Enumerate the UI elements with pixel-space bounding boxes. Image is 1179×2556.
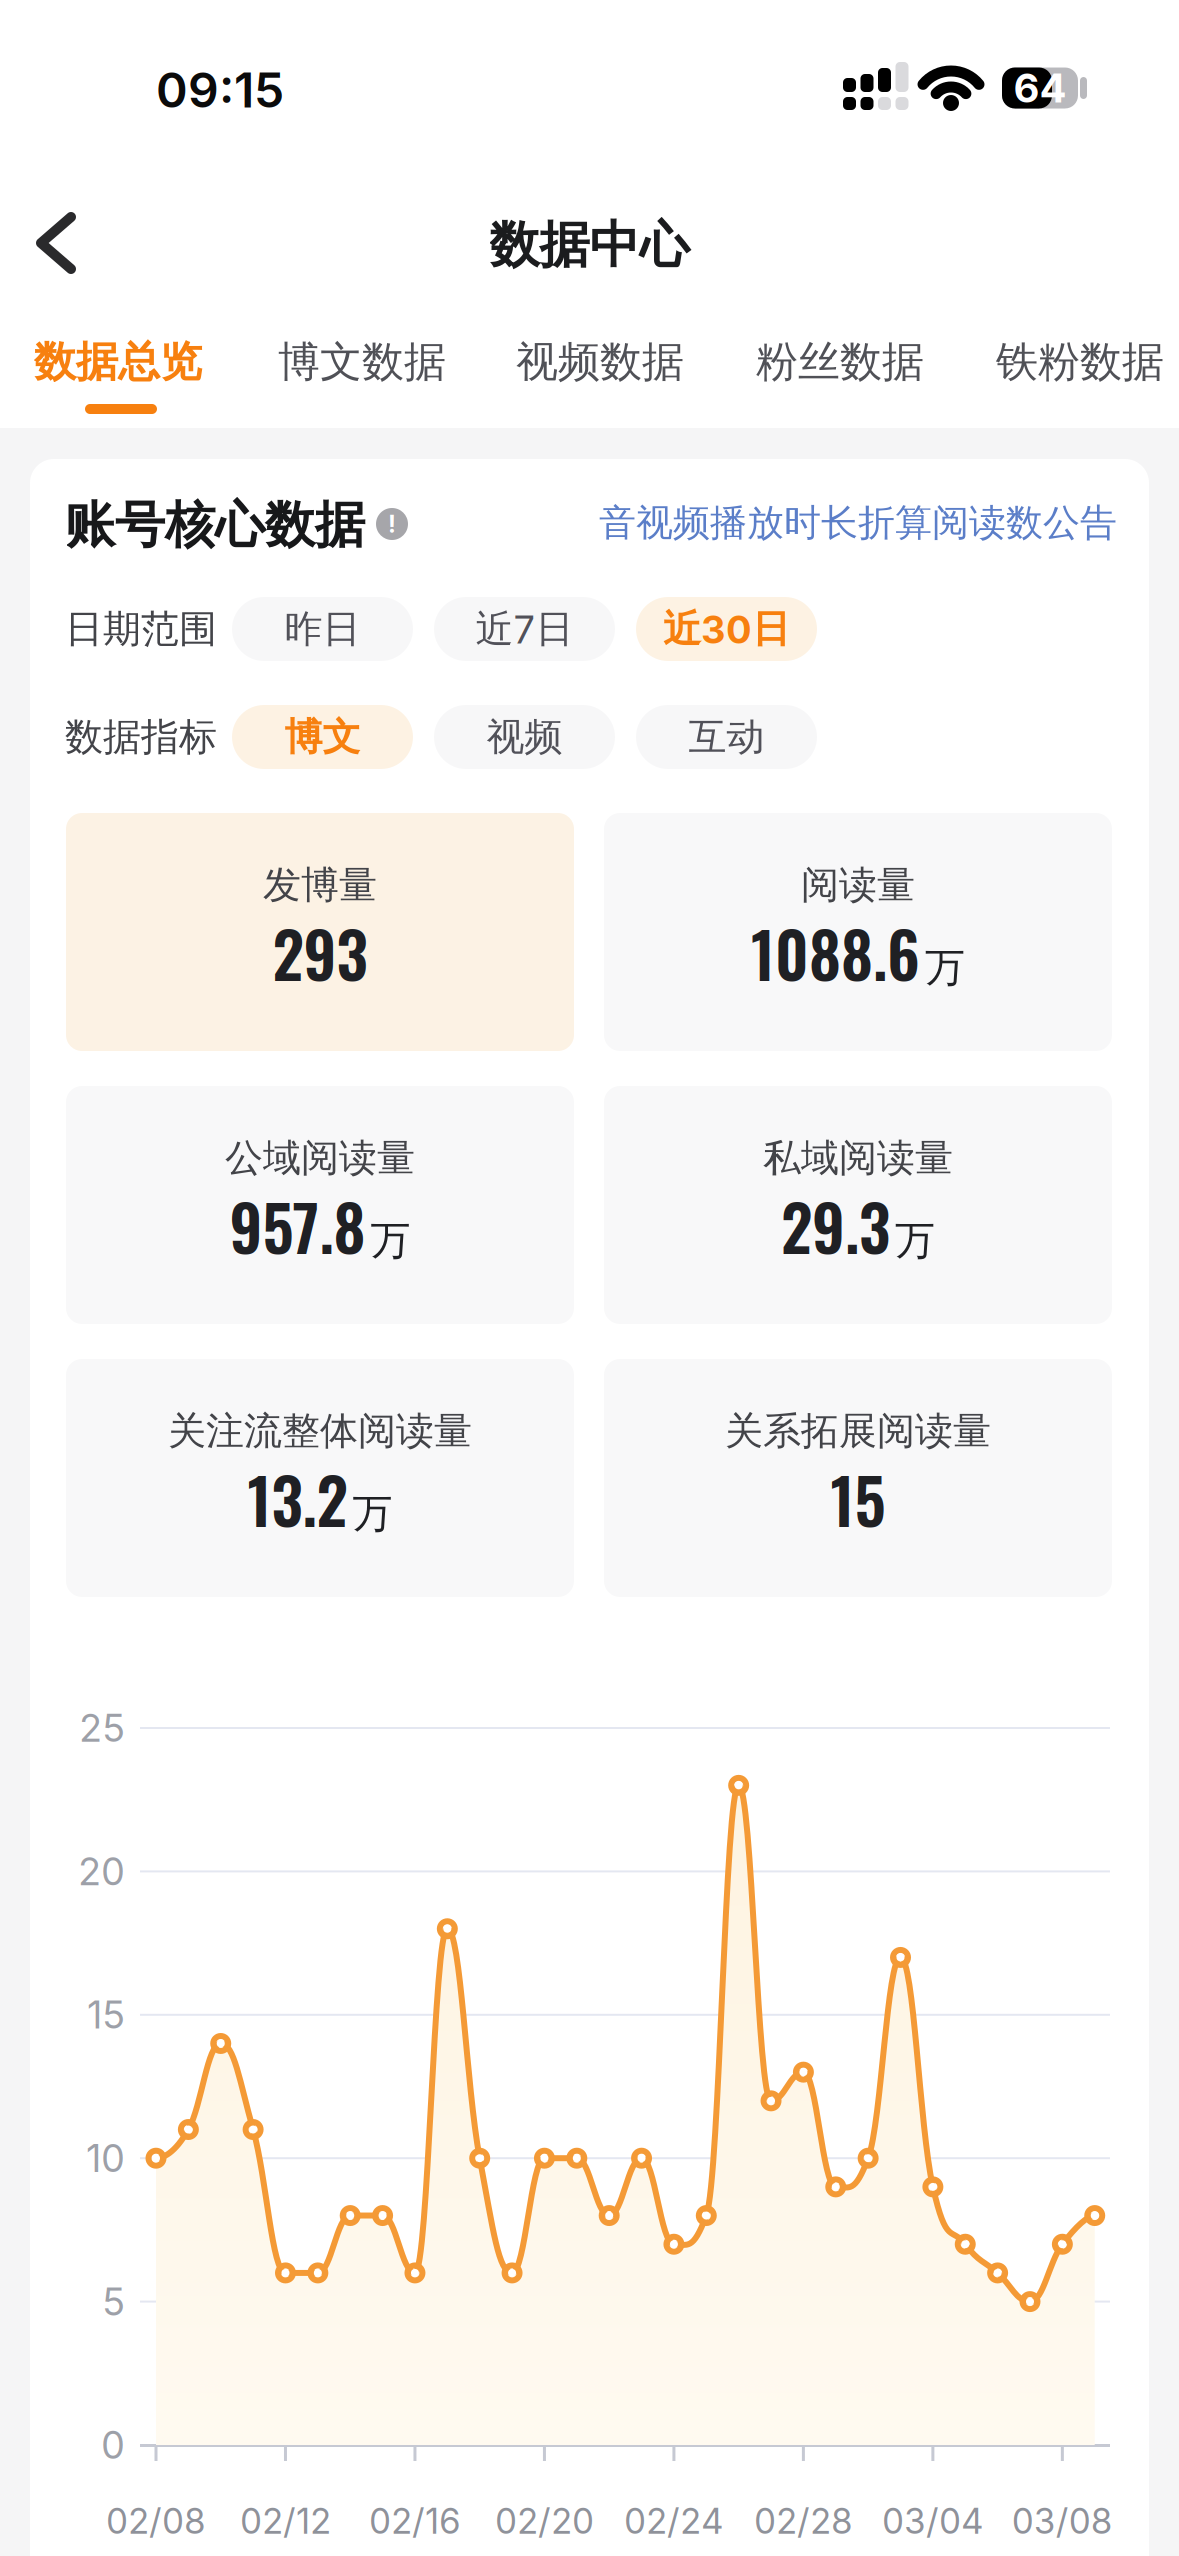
staticText: 账号核心数据 bbox=[65, 494, 365, 556]
staticText: 02/28 bbox=[754, 2500, 853, 2542]
staticText: 1088.6 bbox=[751, 907, 920, 999]
staticText: 关注流整体阅读量 bbox=[168, 1408, 472, 1454]
staticText: 29.3 bbox=[781, 1180, 890, 1272]
staticText: 03/04 bbox=[882, 2500, 984, 2542]
button[interactable]: 博文数据 bbox=[278, 336, 446, 388]
button[interactable]: 视频数据 bbox=[516, 336, 684, 388]
button[interactable]: 视频 bbox=[434, 705, 615, 769]
staticText: 关系拓展阅读量 bbox=[725, 1408, 991, 1454]
staticText: 铁粉数据 bbox=[996, 336, 1164, 388]
staticText: 03/08 bbox=[1012, 2500, 1113, 2542]
button[interactable]: 音视频播放时长折算阅读数公告 bbox=[557, 500, 1117, 546]
staticText: 15 bbox=[87, 1992, 125, 2037]
button[interactable]: 近7日 bbox=[434, 597, 615, 661]
staticText: 数据指标 bbox=[65, 714, 217, 760]
staticText: 293 bbox=[272, 907, 367, 999]
staticText: 万 bbox=[370, 1216, 410, 1265]
staticText: 近30日 bbox=[663, 606, 790, 652]
button[interactable]: 博文 bbox=[232, 705, 413, 769]
button[interactable]: ! bbox=[376, 508, 408, 540]
staticText: 近7日 bbox=[475, 606, 573, 652]
staticText: 万 bbox=[895, 1216, 935, 1265]
staticText: 博文数据 bbox=[278, 336, 446, 388]
staticText: 日期范围 bbox=[65, 606, 217, 652]
staticText: 20 bbox=[78, 1849, 125, 1894]
staticText: 02/08 bbox=[106, 2500, 206, 2542]
button[interactable]: 昨日 bbox=[232, 597, 413, 661]
staticText: 万 bbox=[352, 1489, 392, 1538]
staticText: 13.2 bbox=[247, 1453, 347, 1545]
staticText: 02/16 bbox=[369, 2500, 461, 2542]
staticText: 博文 bbox=[284, 714, 360, 760]
button[interactable]: 粉丝数据 bbox=[756, 336, 924, 388]
staticText: 视频数据 bbox=[516, 336, 684, 388]
staticText: 64 bbox=[1013, 64, 1066, 112]
staticText: 视频 bbox=[486, 714, 562, 760]
staticText: ! bbox=[388, 510, 395, 538]
staticText: 02/20 bbox=[495, 2500, 594, 2542]
staticText: 阅读量 bbox=[801, 862, 915, 908]
staticText: 昨日 bbox=[284, 606, 360, 652]
staticText: 粉丝数据 bbox=[756, 336, 924, 388]
staticText: 25 bbox=[79, 1706, 125, 1750]
staticText: 互动 bbox=[688, 714, 764, 760]
staticText: 数据中心 bbox=[489, 214, 689, 276]
staticText: 02/24 bbox=[624, 2500, 724, 2542]
button[interactable] bbox=[30, 210, 86, 276]
staticText: 10 bbox=[86, 2136, 125, 2181]
staticText: 数据总览 bbox=[34, 336, 202, 388]
staticText: 0 bbox=[101, 2423, 125, 2467]
staticText: 私域阅读量 bbox=[763, 1135, 953, 1181]
staticText: 02/12 bbox=[240, 2500, 331, 2542]
button[interactable]: 数据总览 bbox=[34, 336, 202, 388]
staticText: 15 bbox=[830, 1453, 885, 1545]
staticText: 09:15 bbox=[156, 62, 284, 118]
staticText: 万 bbox=[925, 943, 965, 992]
staticText: 公域阅读量 bbox=[225, 1135, 415, 1181]
staticText: 音视频播放时长折算阅读数公告 bbox=[599, 500, 1117, 546]
staticText: 发博量 bbox=[263, 862, 377, 908]
button[interactable]: 铁粉数据 bbox=[996, 336, 1164, 388]
button[interactable]: 互动 bbox=[636, 705, 817, 769]
staticText: 5 bbox=[102, 2279, 125, 2324]
button[interactable]: 近30日 bbox=[636, 597, 817, 661]
staticText: 957.8 bbox=[229, 1180, 365, 1272]
